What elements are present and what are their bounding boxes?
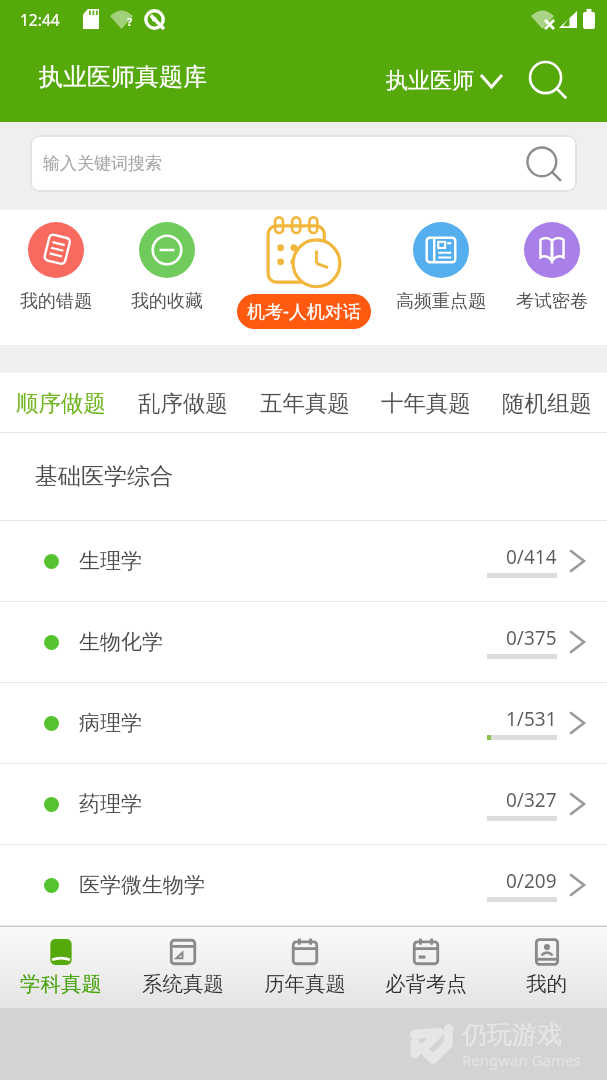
staticText: 五年真题 bbox=[260, 389, 350, 417]
button[interactable]: 学科真题 bbox=[0, 927, 122, 1008]
button[interactable]: 我的错题 bbox=[0, 210, 111, 345]
staticText: 顺序做题 bbox=[16, 389, 106, 417]
button[interactable]: 考试密卷 bbox=[496, 210, 607, 345]
staticText: 0/375 bbox=[506, 625, 557, 651]
button[interactable]: 十年真题 bbox=[365, 373, 486, 432]
staticText: 药理学 bbox=[79, 791, 142, 817]
staticText: 学科真题 bbox=[20, 971, 102, 997]
button[interactable]: 药理学 bbox=[0, 764, 607, 845]
button[interactable]: 必背考点 bbox=[365, 927, 486, 1008]
button[interactable]: 病理学 bbox=[0, 683, 607, 764]
staticText: 仍玩游戏 bbox=[462, 1019, 562, 1050]
staticText: 执业医师 bbox=[386, 67, 474, 95]
staticText: 乱序做题 bbox=[138, 389, 228, 417]
staticText: 生理学 bbox=[79, 548, 142, 574]
button[interactable]: 我的 bbox=[486, 927, 607, 1008]
button[interactable]: 输入关键词搜索 bbox=[30, 135, 577, 192]
button[interactable]: 五年真题 bbox=[244, 373, 365, 432]
staticText: 0/414 bbox=[506, 544, 557, 570]
button[interactable]: 系统真题 bbox=[122, 927, 244, 1008]
button[interactable]: 生理学 bbox=[0, 521, 607, 602]
staticText: 机考-人机对话 bbox=[247, 299, 361, 324]
staticText: 我的收藏 bbox=[131, 290, 203, 313]
staticText: 系统真题 bbox=[142, 971, 224, 997]
staticText: Rengwan Games bbox=[462, 1050, 581, 1070]
staticText: 必背考点 bbox=[385, 971, 467, 997]
staticText: ? bbox=[127, 14, 133, 29]
button[interactable]: 执业医师 bbox=[386, 67, 502, 95]
button[interactable]: 生物化学 bbox=[0, 602, 607, 683]
button[interactable]: 顺序做题 bbox=[0, 373, 122, 432]
staticText: 随机组题 bbox=[502, 389, 592, 417]
staticText: 历年真题 bbox=[264, 971, 346, 997]
button[interactable] bbox=[530, 62, 567, 99]
staticText: 十年真题 bbox=[381, 389, 471, 417]
staticText: 1/531 bbox=[506, 706, 557, 732]
button[interactable]: 机考-人机对话 bbox=[222, 210, 385, 345]
button[interactable]: 随机组题 bbox=[486, 373, 607, 432]
button[interactable]: 我的收藏 bbox=[111, 210, 222, 345]
button[interactable]: 历年真题 bbox=[244, 927, 365, 1008]
button[interactable]: 医学微生物学 bbox=[0, 845, 607, 926]
staticText: 输入关键词搜索 bbox=[43, 153, 162, 174]
staticText: 病理学 bbox=[79, 710, 142, 736]
staticText: 高频重点题 bbox=[396, 290, 486, 313]
button[interactable]: 乱序做题 bbox=[122, 373, 244, 432]
staticText: 12:44 bbox=[20, 9, 60, 30]
staticText: 考试密卷 bbox=[516, 290, 588, 313]
staticText: 0/327 bbox=[506, 787, 557, 813]
staticText: 医学微生物学 bbox=[79, 872, 205, 898]
staticText: 基础医学综合 bbox=[35, 462, 173, 491]
button[interactable]: 高频重点题 bbox=[385, 210, 496, 345]
staticText: 我的错题 bbox=[20, 290, 92, 313]
staticText: 我的 bbox=[526, 971, 567, 997]
staticText: 执业医师真题库 bbox=[39, 62, 207, 92]
staticText: 生物化学 bbox=[79, 629, 163, 655]
staticText: 0/209 bbox=[506, 868, 557, 894]
